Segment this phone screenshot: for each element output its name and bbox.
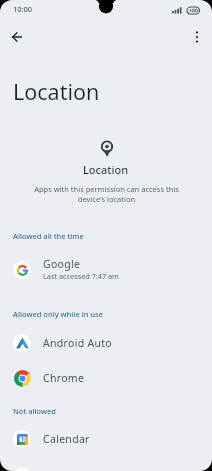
staticText: Calendar (43, 432, 90, 446)
staticText: Android Auto (43, 336, 112, 350)
button[interactable] (184, 24, 210, 50)
staticText: Allowed only while in use (13, 309, 103, 319)
staticText: 10:00 (13, 4, 32, 14)
staticText: Allowed all the time (13, 231, 84, 241)
button[interactable]: Google (0, 253, 212, 287)
staticText: Not allowed (13, 406, 57, 416)
staticText: Apps with this permission can access thi… (34, 184, 179, 204)
staticText: Location (13, 77, 100, 106)
staticText: Last accessed 7:47 am (43, 271, 119, 281)
staticText: Google (43, 257, 81, 271)
button[interactable] (4, 24, 30, 50)
staticText: Chrome (43, 371, 85, 385)
button[interactable]: Chrome (0, 361, 212, 395)
staticText: Location (83, 162, 129, 177)
button[interactable]: Android Auto (0, 326, 212, 360)
button[interactable] (0, 459, 212, 471)
button[interactable]: Calendar (0, 422, 212, 456)
